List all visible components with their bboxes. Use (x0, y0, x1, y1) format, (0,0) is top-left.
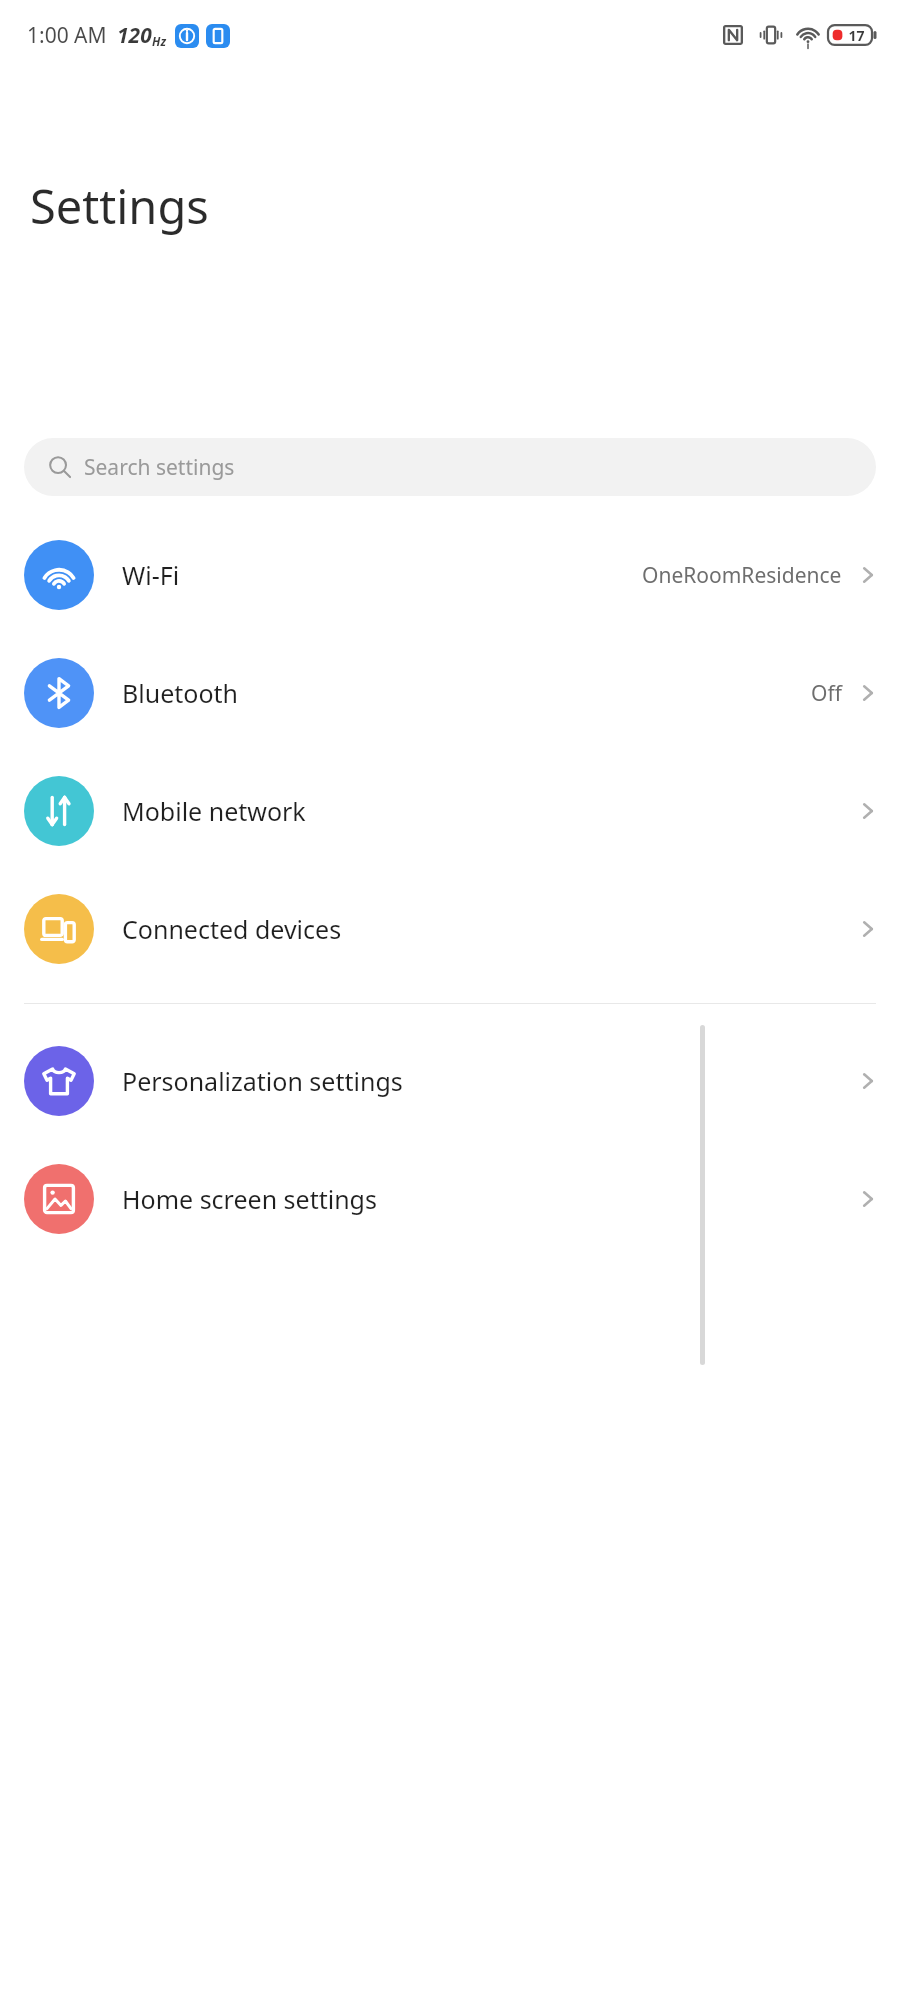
staticText: Connected devices (122, 912, 342, 946)
button[interactable]: Search settings (24, 438, 876, 496)
staticText: Search settings (84, 453, 235, 482)
staticText: 120 (117, 21, 152, 50)
staticText: Mobile network (122, 794, 306, 828)
staticText: 17 (848, 26, 865, 45)
button[interactable]: Mobile network (0, 752, 900, 870)
staticText: Off (811, 679, 842, 708)
button[interactable]: Wi-Fi (0, 516, 900, 634)
staticText: Personalization settings (122, 1064, 403, 1098)
button[interactable]: Connected devices (0, 870, 900, 988)
button[interactable]: Bluetooth (0, 634, 900, 752)
staticText: Home screen settings (122, 1182, 377, 1216)
staticText: Bluetooth (122, 676, 239, 710)
button[interactable]: Personalization settings (0, 1022, 900, 1140)
staticText: 1:00 AM (27, 21, 107, 50)
button[interactable]: Home screen settings (0, 1140, 900, 1258)
staticText: Wi-Fi (122, 558, 180, 592)
staticText: Settings (30, 174, 209, 238)
staticText: Hz (152, 33, 167, 49)
staticText: OneRoomResidence (642, 561, 842, 590)
